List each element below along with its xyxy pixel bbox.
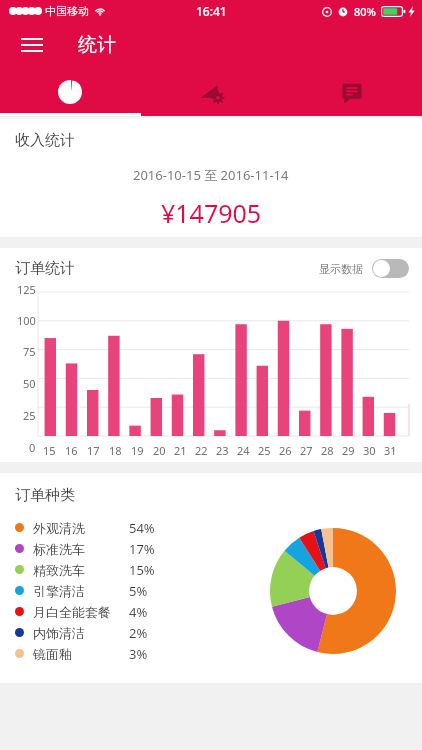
staticText: 显示数据 [319,262,363,276]
staticText: 25 [258,443,271,458]
staticText: 2016-10-15 至 2016-11-14 [133,166,289,184]
staticText: 75 [23,344,36,359]
staticText: 中国移动 [45,4,89,18]
button[interactable]: 标准洗车 [15,538,422,559]
staticText: 订单统计 [15,259,75,278]
staticText: 5% [129,582,148,600]
button[interactable]: 外观清洗 [15,517,422,538]
staticText: ¥147905 [161,196,262,230]
staticText: 125 [17,282,36,297]
staticText: 15% [129,561,155,579]
staticText: 27 [300,443,313,458]
button[interactable]: 内饰清洁 [15,622,422,643]
staticText: 18 [109,443,122,458]
staticText: 25 [23,408,36,423]
staticText: 24 [237,443,250,458]
staticText: 29 [342,443,355,458]
button[interactable]: 显示数据 [319,259,409,278]
button[interactable]: Performance tab [140,68,281,116]
staticText: 80% [354,4,376,19]
staticText: 0 [29,440,36,455]
staticText: 28 [321,443,334,458]
staticText: 23 [216,443,229,458]
staticText: 外观清洗 [33,520,85,536]
staticText: 16:41 [196,3,227,19]
button[interactable]: 月白全能套餐 [15,601,422,622]
staticText: 月白全能套餐 [33,604,111,620]
button[interactable]: 引擎清洁 [15,580,422,601]
staticText: 标准洗车 [33,541,85,557]
staticText: 4% [129,603,148,621]
staticText: 19 [131,443,144,458]
button[interactable]: 镜面釉 [15,643,422,664]
staticText: 15 [43,443,56,458]
staticText: 26 [279,443,292,458]
button[interactable]: Income statistics tab [0,68,140,116]
button[interactable]: Open navigation menu [10,23,54,67]
staticText: 54% [129,519,155,537]
staticText: 内饰清洁 [33,625,85,641]
staticText: 镜面釉 [33,646,72,662]
staticText: 3% [129,645,148,663]
staticText: 100 [17,313,36,328]
staticText: 16 [65,443,78,458]
staticText: 17% [129,540,155,558]
button[interactable]: Messages tab [281,68,422,116]
staticText: 统计 [78,33,116,57]
staticText: 收入统计 [15,131,75,150]
staticText: 22 [195,443,208,458]
staticText: 20 [153,443,166,458]
staticText: 精致洗车 [33,562,85,578]
staticText: 引擎清洁 [33,583,85,599]
staticText: 30 [363,443,376,458]
staticText: 31 [384,443,397,458]
staticText: 订单种类 [15,486,75,505]
button[interactable]: 精致洗车 [15,559,422,580]
staticText: 50 [23,376,36,391]
staticText: 17 [87,443,100,458]
staticText: 21 [174,443,187,458]
staticText: 2% [129,624,148,642]
